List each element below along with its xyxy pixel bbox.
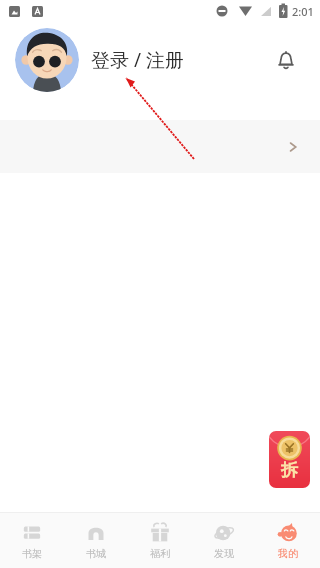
button[interactable]: Notifications [270, 44, 302, 76]
button[interactable]: 发现 [192, 513, 256, 568]
button[interactable] [0, 120, 320, 173]
staticText: 2:01 [292, 4, 314, 19]
staticText: 发现 [214, 547, 234, 560]
staticText: 拆 [281, 460, 298, 481]
button[interactable]: 我的 [256, 513, 320, 568]
button[interactable]: 书城 [64, 513, 128, 568]
staticText: 登录 / 注册 [91, 47, 184, 73]
staticText: 我的 [278, 547, 298, 560]
staticText: 书城 [86, 547, 106, 560]
staticText: 书架 [22, 547, 42, 560]
button[interactable]: 登录 / 注册 [91, 47, 184, 73]
staticText: 福利 [150, 547, 170, 560]
button[interactable]: 福利 [128, 513, 192, 568]
button[interactable]: Open red packet [269, 431, 310, 488]
button[interactable]: 书架 [0, 513, 64, 568]
button[interactable]: Avatar [15, 28, 79, 92]
